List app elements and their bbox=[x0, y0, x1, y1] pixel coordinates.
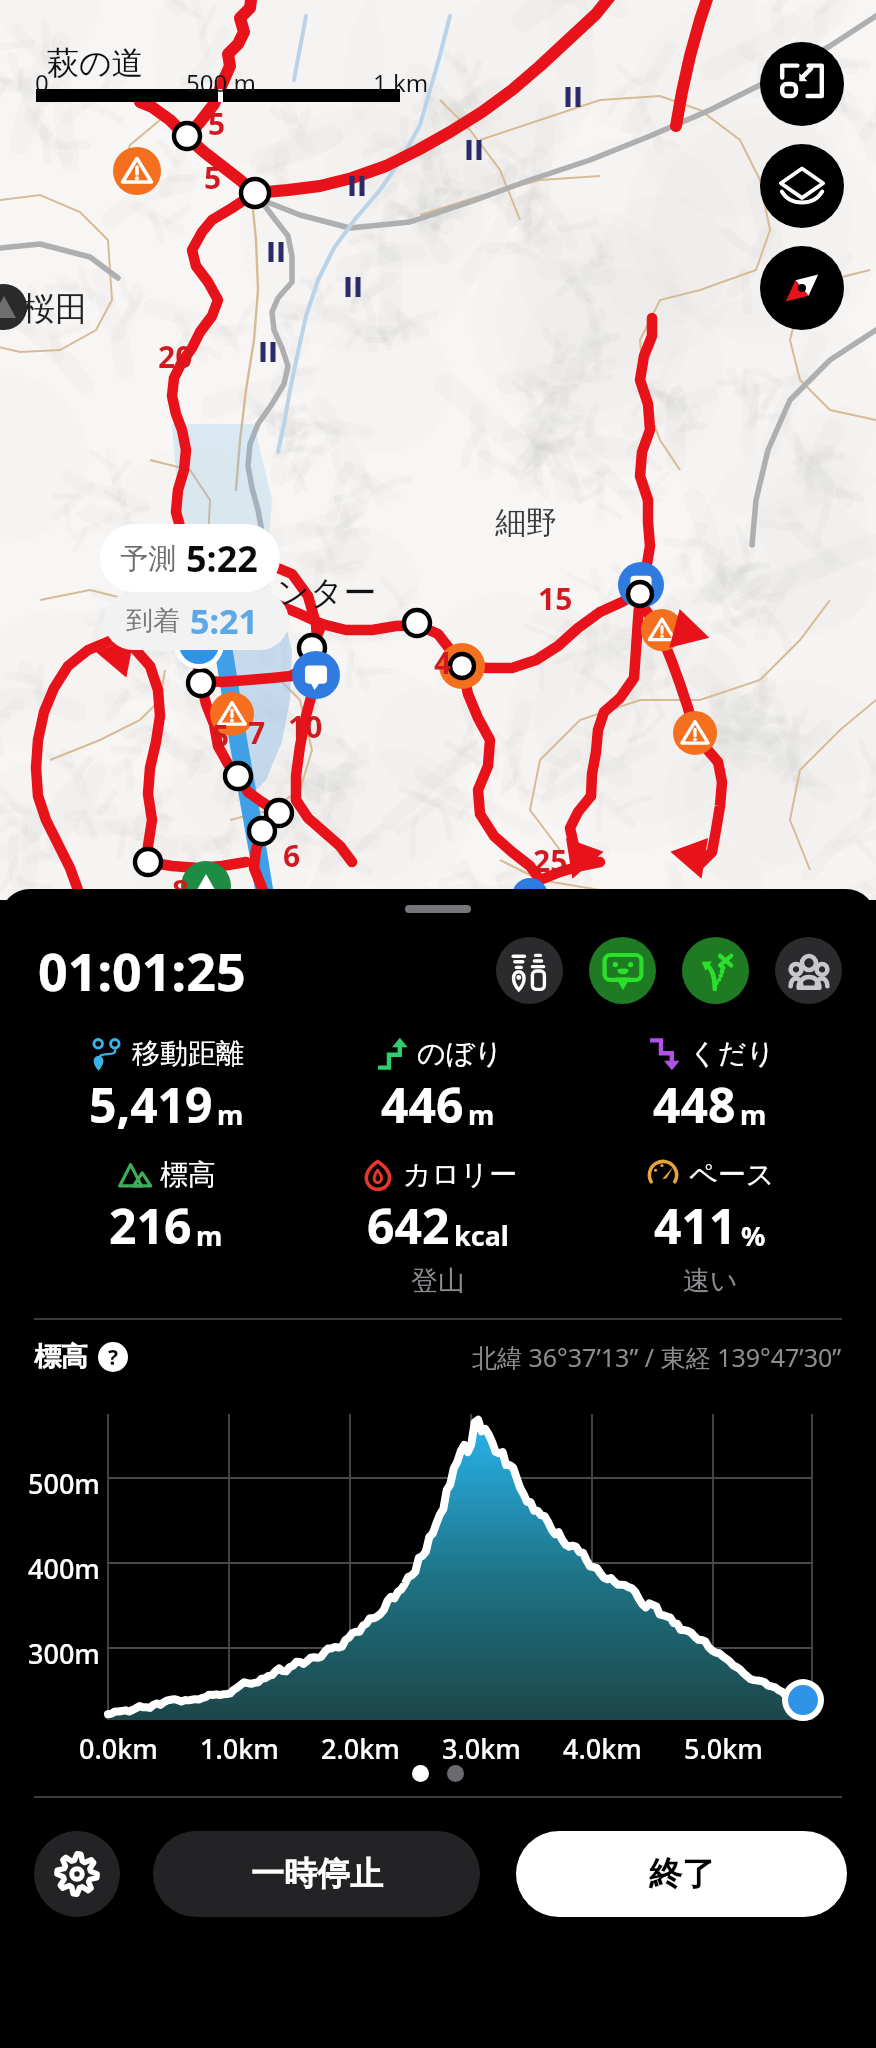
button[interactable]: Route bbox=[682, 937, 749, 1004]
staticText: 1.0km bbox=[200, 1730, 279, 1767]
button[interactable]: Map layers bbox=[760, 144, 844, 228]
staticText: 15 bbox=[538, 578, 573, 619]
staticText: % bbox=[741, 1217, 766, 1254]
staticText: ペース bbox=[689, 1157, 775, 1192]
staticText: 5,419 bbox=[89, 1072, 213, 1137]
button[interactable]: 到着 bbox=[126, 592, 289, 650]
staticText: 400m bbox=[28, 1550, 100, 1587]
staticText: 4 bbox=[434, 642, 452, 683]
staticText: ンター bbox=[276, 572, 377, 614]
staticText: m bbox=[196, 1217, 223, 1254]
staticText: m bbox=[468, 1096, 495, 1133]
staticText: 萩の道 bbox=[47, 43, 144, 83]
staticText: 01:01:25 bbox=[38, 935, 246, 1006]
staticText: 5.0km bbox=[684, 1730, 763, 1767]
staticText: 細野 bbox=[495, 503, 557, 542]
staticText: 移動距離 bbox=[132, 1036, 244, 1071]
button[interactable]: Waypoints bbox=[496, 937, 563, 1004]
button[interactable]: 一時停止 bbox=[153, 1831, 480, 1917]
staticText: 300m bbox=[28, 1635, 100, 1672]
staticText: 3.0km bbox=[442, 1730, 521, 1767]
staticText: くだり bbox=[689, 1036, 775, 1071]
staticText: 標高 bbox=[160, 1157, 216, 1192]
staticText: 予測 bbox=[120, 541, 176, 576]
staticText: 一時停止 bbox=[251, 1853, 383, 1895]
staticText: ? bbox=[108, 1343, 119, 1372]
button[interactable]: Compass bbox=[760, 246, 844, 330]
staticText: 速い bbox=[683, 1264, 738, 1298]
staticText: 5 bbox=[212, 715, 230, 756]
button[interactable]: 予測 bbox=[120, 524, 280, 592]
staticText: 到着 bbox=[126, 604, 180, 638]
staticText: 411 bbox=[654, 1193, 737, 1258]
button[interactable]: Post bbox=[589, 937, 656, 1004]
staticText: 20 bbox=[158, 336, 193, 377]
staticText: カロリー bbox=[403, 1157, 517, 1192]
staticText: 登山 bbox=[411, 1264, 465, 1298]
button[interactable]: 終了 bbox=[516, 1831, 847, 1917]
staticText: 標高 bbox=[34, 1340, 88, 1374]
staticText: kcal bbox=[454, 1217, 509, 1254]
staticText: 448 bbox=[653, 1072, 736, 1137]
staticText: 25 bbox=[533, 840, 568, 881]
staticText: 0 bbox=[35, 66, 49, 99]
staticText: 216 bbox=[109, 1193, 192, 1258]
staticText: 5 bbox=[204, 157, 222, 198]
staticText: のぼり bbox=[417, 1036, 503, 1071]
staticText: m bbox=[740, 1096, 767, 1133]
button[interactable]: Help bbox=[98, 1342, 128, 1372]
staticText: 北緯 36°37’13” / 東経 139°47’30” bbox=[472, 1340, 842, 1374]
staticText: 7 bbox=[248, 712, 266, 753]
staticText: 8 bbox=[172, 870, 190, 911]
staticText: 446 bbox=[381, 1072, 464, 1137]
staticText: 6 bbox=[283, 835, 301, 876]
staticText: 1 km bbox=[373, 66, 429, 99]
staticText: 桜田 bbox=[22, 288, 88, 330]
staticText: 2.0km bbox=[321, 1730, 400, 1767]
button[interactable]: Minimize map bbox=[760, 42, 844, 126]
staticText: 5:21 bbox=[190, 598, 258, 644]
button[interactable]: Members bbox=[775, 937, 842, 1004]
staticText: 500 m bbox=[186, 66, 256, 99]
staticText: 5:22 bbox=[186, 534, 258, 583]
staticText: 10 bbox=[288, 706, 323, 747]
button[interactable]: Settings bbox=[34, 1831, 120, 1917]
staticText: 5 bbox=[208, 103, 226, 144]
staticText: 4.0km bbox=[563, 1730, 642, 1767]
staticText: 終了 bbox=[649, 1853, 715, 1895]
staticText: 500m bbox=[28, 1465, 100, 1502]
staticText: m bbox=[217, 1096, 244, 1133]
staticText: 642 bbox=[367, 1193, 450, 1258]
staticText: 0.0km bbox=[79, 1730, 158, 1767]
